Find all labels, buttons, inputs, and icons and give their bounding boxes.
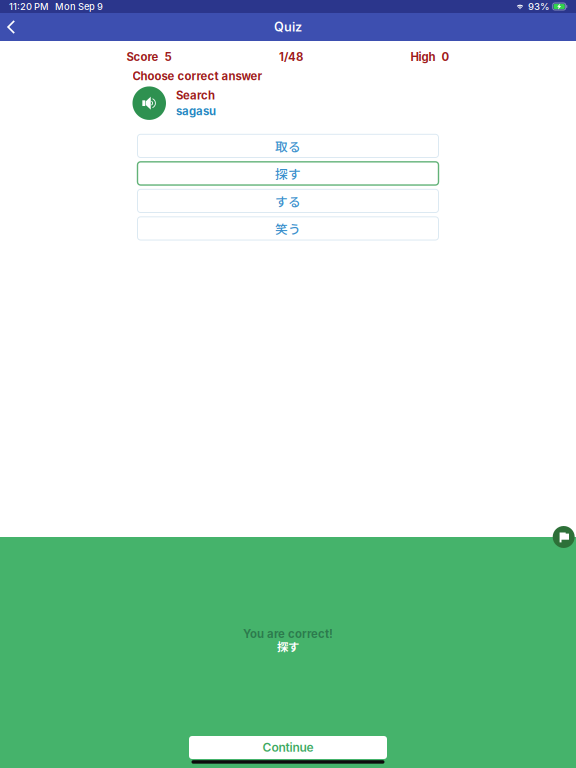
staticText: 探す (275, 164, 301, 183)
button[interactable]: 探す (137, 162, 438, 185)
button[interactable]: する (137, 189, 438, 212)
button[interactable]: 笑う (137, 217, 438, 240)
staticText: Choose correct answer (132, 69, 262, 83)
staticText: High 0 (410, 50, 449, 64)
staticText: You are correct! (243, 627, 333, 641)
staticText: 取る (275, 137, 301, 155)
staticText: 笑う (275, 219, 301, 238)
button[interactable]: Play audio (132, 86, 166, 120)
staticText: 93% (525, 1, 553, 12)
button[interactable]: 取る (137, 134, 438, 157)
staticText: Score 5 (126, 50, 171, 64)
staticText: 1/48 (279, 50, 303, 64)
staticText: Search (176, 88, 215, 102)
staticText: Quiz (274, 19, 302, 35)
staticText: sagasu (176, 104, 216, 118)
button[interactable]: Report (553, 526, 575, 548)
staticText: 11:20 PM Mon Sep 9 (9, 1, 103, 12)
staticText: する (275, 192, 301, 210)
staticText: 探す (277, 638, 299, 654)
button[interactable]: Continue (189, 736, 387, 759)
button[interactable]: Back (0, 13, 22, 41)
staticText: Continue (262, 740, 313, 755)
